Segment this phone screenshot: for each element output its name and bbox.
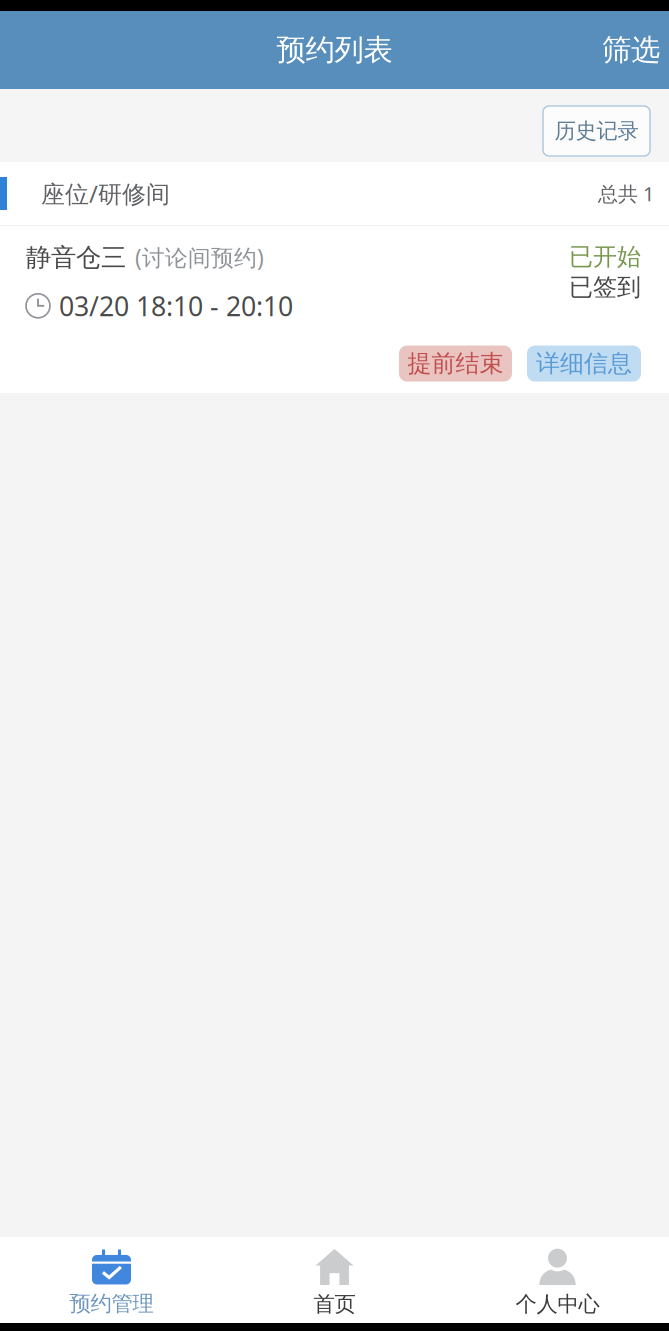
staticText: 已签到 [569, 272, 641, 302]
staticText: 座位/研修间 [41, 178, 170, 209]
staticText: 总共 1 [598, 180, 654, 207]
staticText: 静音仓三 [26, 242, 126, 273]
button[interactable]: 个人中心 [446, 1249, 669, 1317]
staticText: 预约管理 [69, 1290, 153, 1317]
button[interactable]: 首页 [223, 1249, 446, 1317]
staticText: 详细信息 [536, 349, 632, 378]
button[interactable]: 预约管理 [0, 1249, 223, 1317]
staticText: 提前结束 [407, 349, 503, 378]
button[interactable]: 详细信息 [527, 345, 641, 381]
staticText: 筛选 [602, 32, 660, 68]
staticText: 已开始 [569, 242, 641, 271]
staticText: 历史记录 [554, 118, 638, 144]
button[interactable]: 提前结束 [399, 345, 512, 381]
staticText: 个人中心 [515, 1291, 599, 1317]
staticText: 预约列表 [276, 32, 392, 68]
staticText: 03/20 18:10 - 20:10 [59, 288, 293, 323]
staticText: 首页 [313, 1291, 355, 1317]
button[interactable]: 筛选 [598, 24, 664, 76]
button[interactable]: 历史记录 [543, 106, 650, 156]
staticText: (讨论间预约) [135, 242, 264, 272]
